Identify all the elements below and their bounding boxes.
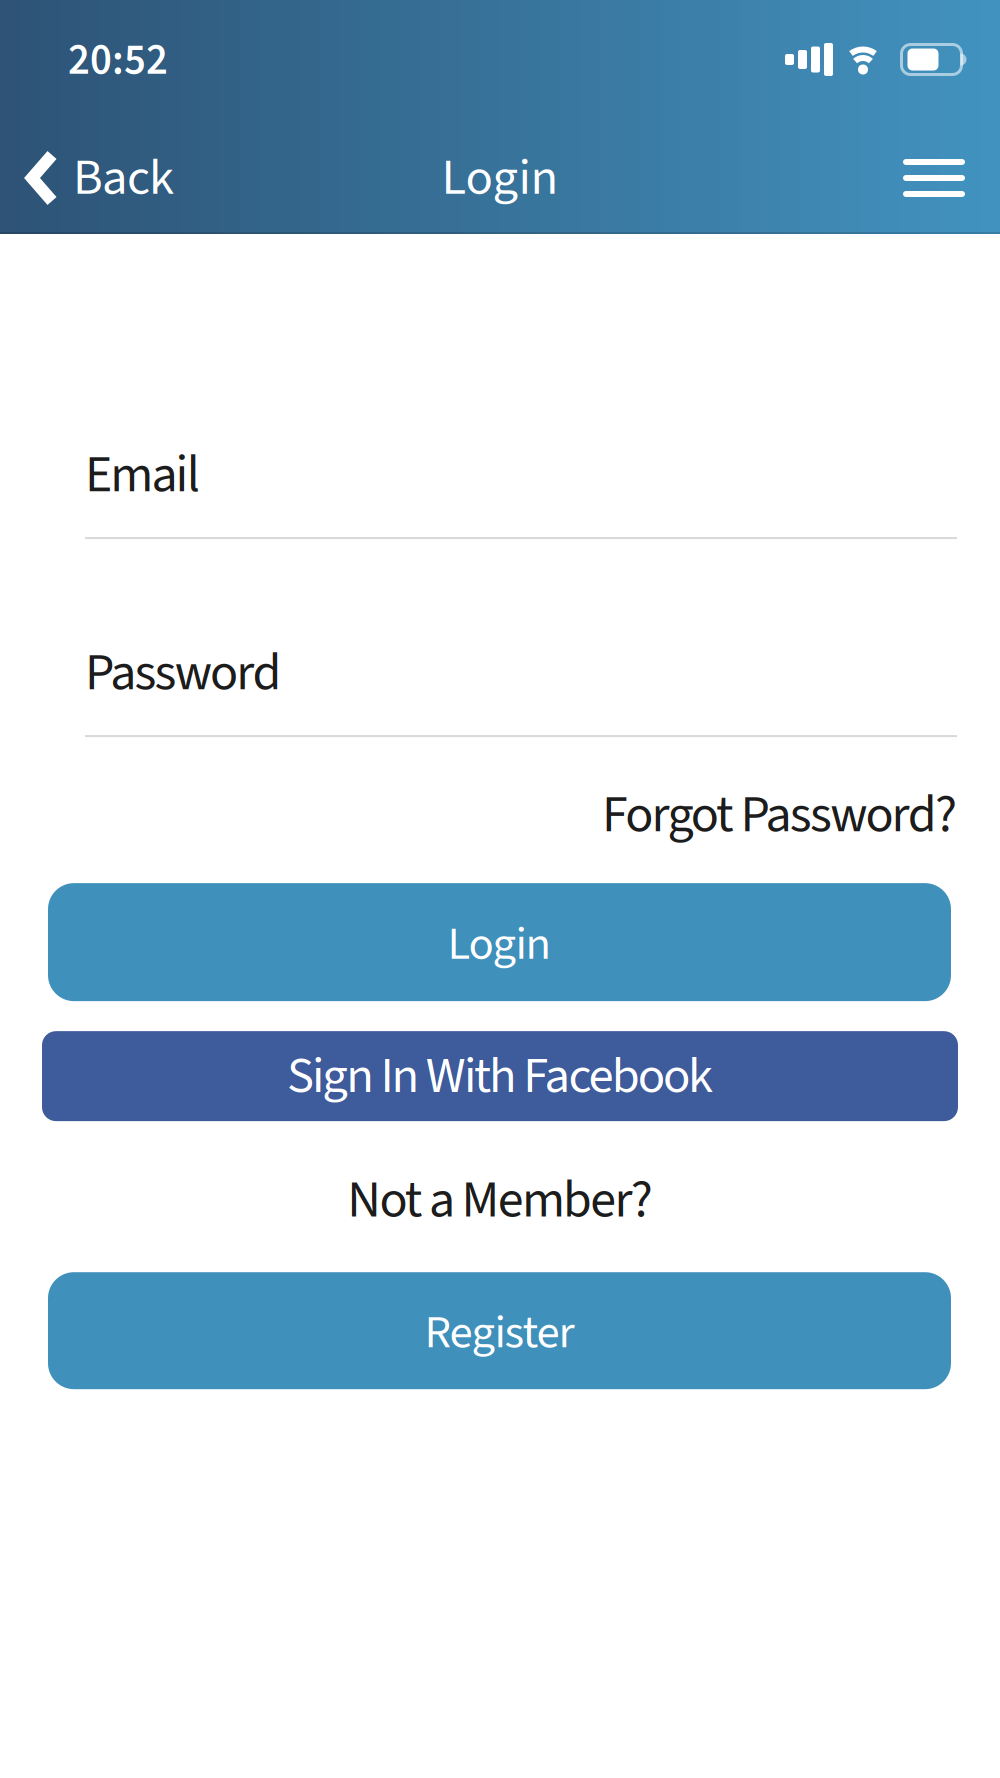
staticText: Login [441,142,558,214]
staticText: Back [73,142,174,214]
staticText: Register [424,1299,574,1366]
staticText: Sign In With Facebook [287,1040,713,1112]
staticText: Login [447,911,551,977]
staticText: 20:52 [68,30,168,91]
staticText: Password [85,636,281,710]
button[interactable]: Back [27,142,174,214]
button[interactable]: Forgot Password? [602,778,957,852]
button[interactable]: Register [48,1272,951,1389]
staticText: Forgot Password? [602,778,957,852]
staticText: Not a Member? [347,1163,653,1237]
staticText: Email [85,438,200,512]
button[interactable]: Menu [903,159,965,197]
button[interactable]: Sign In With Facebook [42,1031,958,1121]
button[interactable]: Login [48,883,951,1001]
